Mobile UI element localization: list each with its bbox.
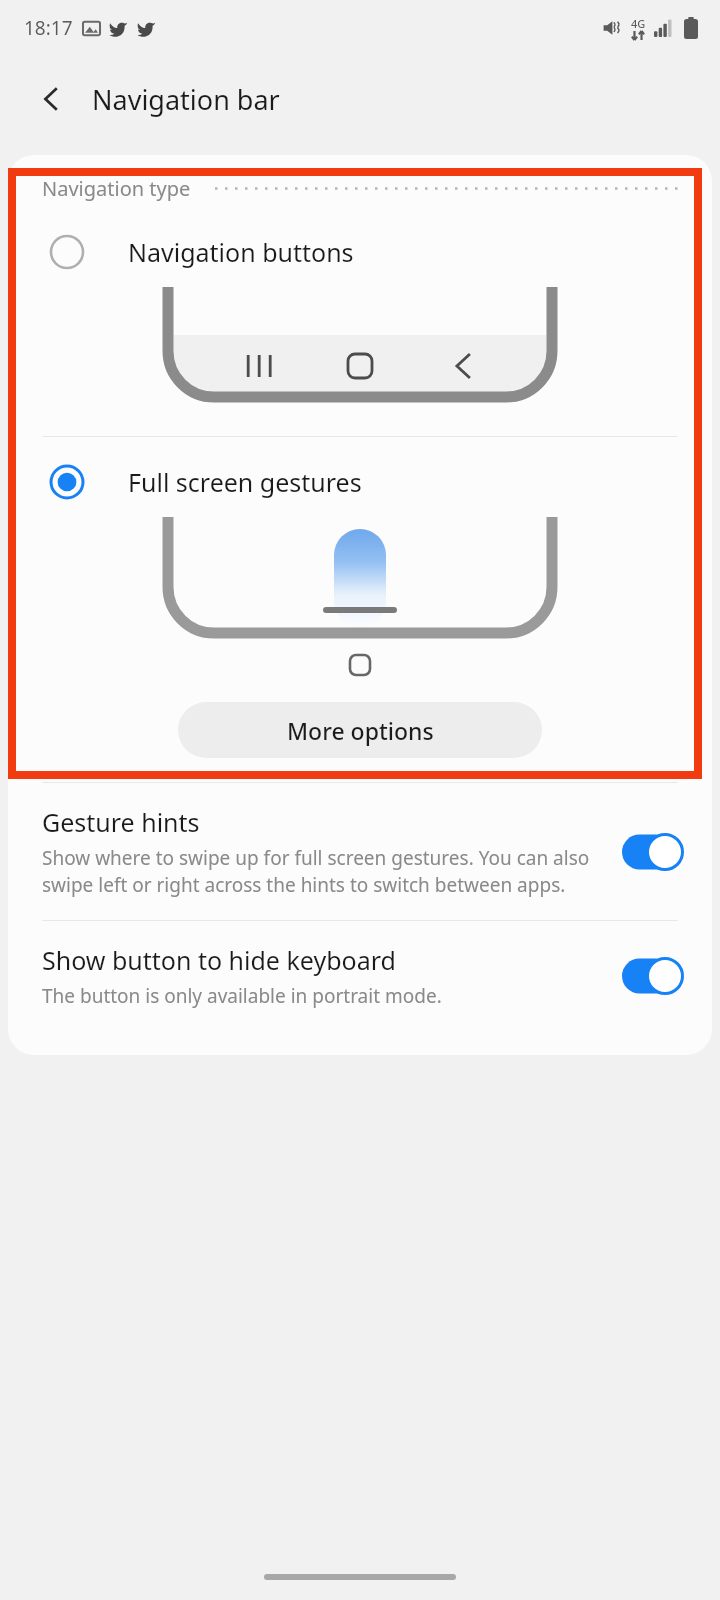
button[interactable]: Back bbox=[28, 75, 76, 123]
staticText: 4G bbox=[631, 16, 646, 31]
staticText: Full screen gestures bbox=[128, 465, 362, 499]
other: Gesture hints bbox=[622, 833, 684, 871]
staticText: More options bbox=[287, 715, 434, 746]
button[interactable]: Full screen gestures bbox=[8, 451, 712, 698]
button[interactable]: Gesture hints bbox=[8, 783, 712, 920]
staticText: Navigation bar bbox=[92, 81, 280, 118]
staticText: Navigation buttons bbox=[128, 235, 354, 269]
staticText: Gesture hints bbox=[42, 805, 200, 839]
staticText: Navigation type bbox=[42, 175, 191, 202]
button[interactable]: Show button to hide keyboard bbox=[8, 921, 712, 1031]
button[interactable]: Navigation buttons bbox=[8, 221, 712, 413]
button[interactable]: More options bbox=[178, 702, 542, 758]
staticText: 18:17 bbox=[24, 15, 73, 41]
staticText: The button is only available in portrait… bbox=[42, 983, 442, 1009]
other: Show button to hide keyboard bbox=[622, 957, 684, 995]
staticText: Show button to hide keyboard bbox=[42, 943, 396, 977]
staticText: Show where to swipe up for full screen g… bbox=[42, 845, 600, 898]
